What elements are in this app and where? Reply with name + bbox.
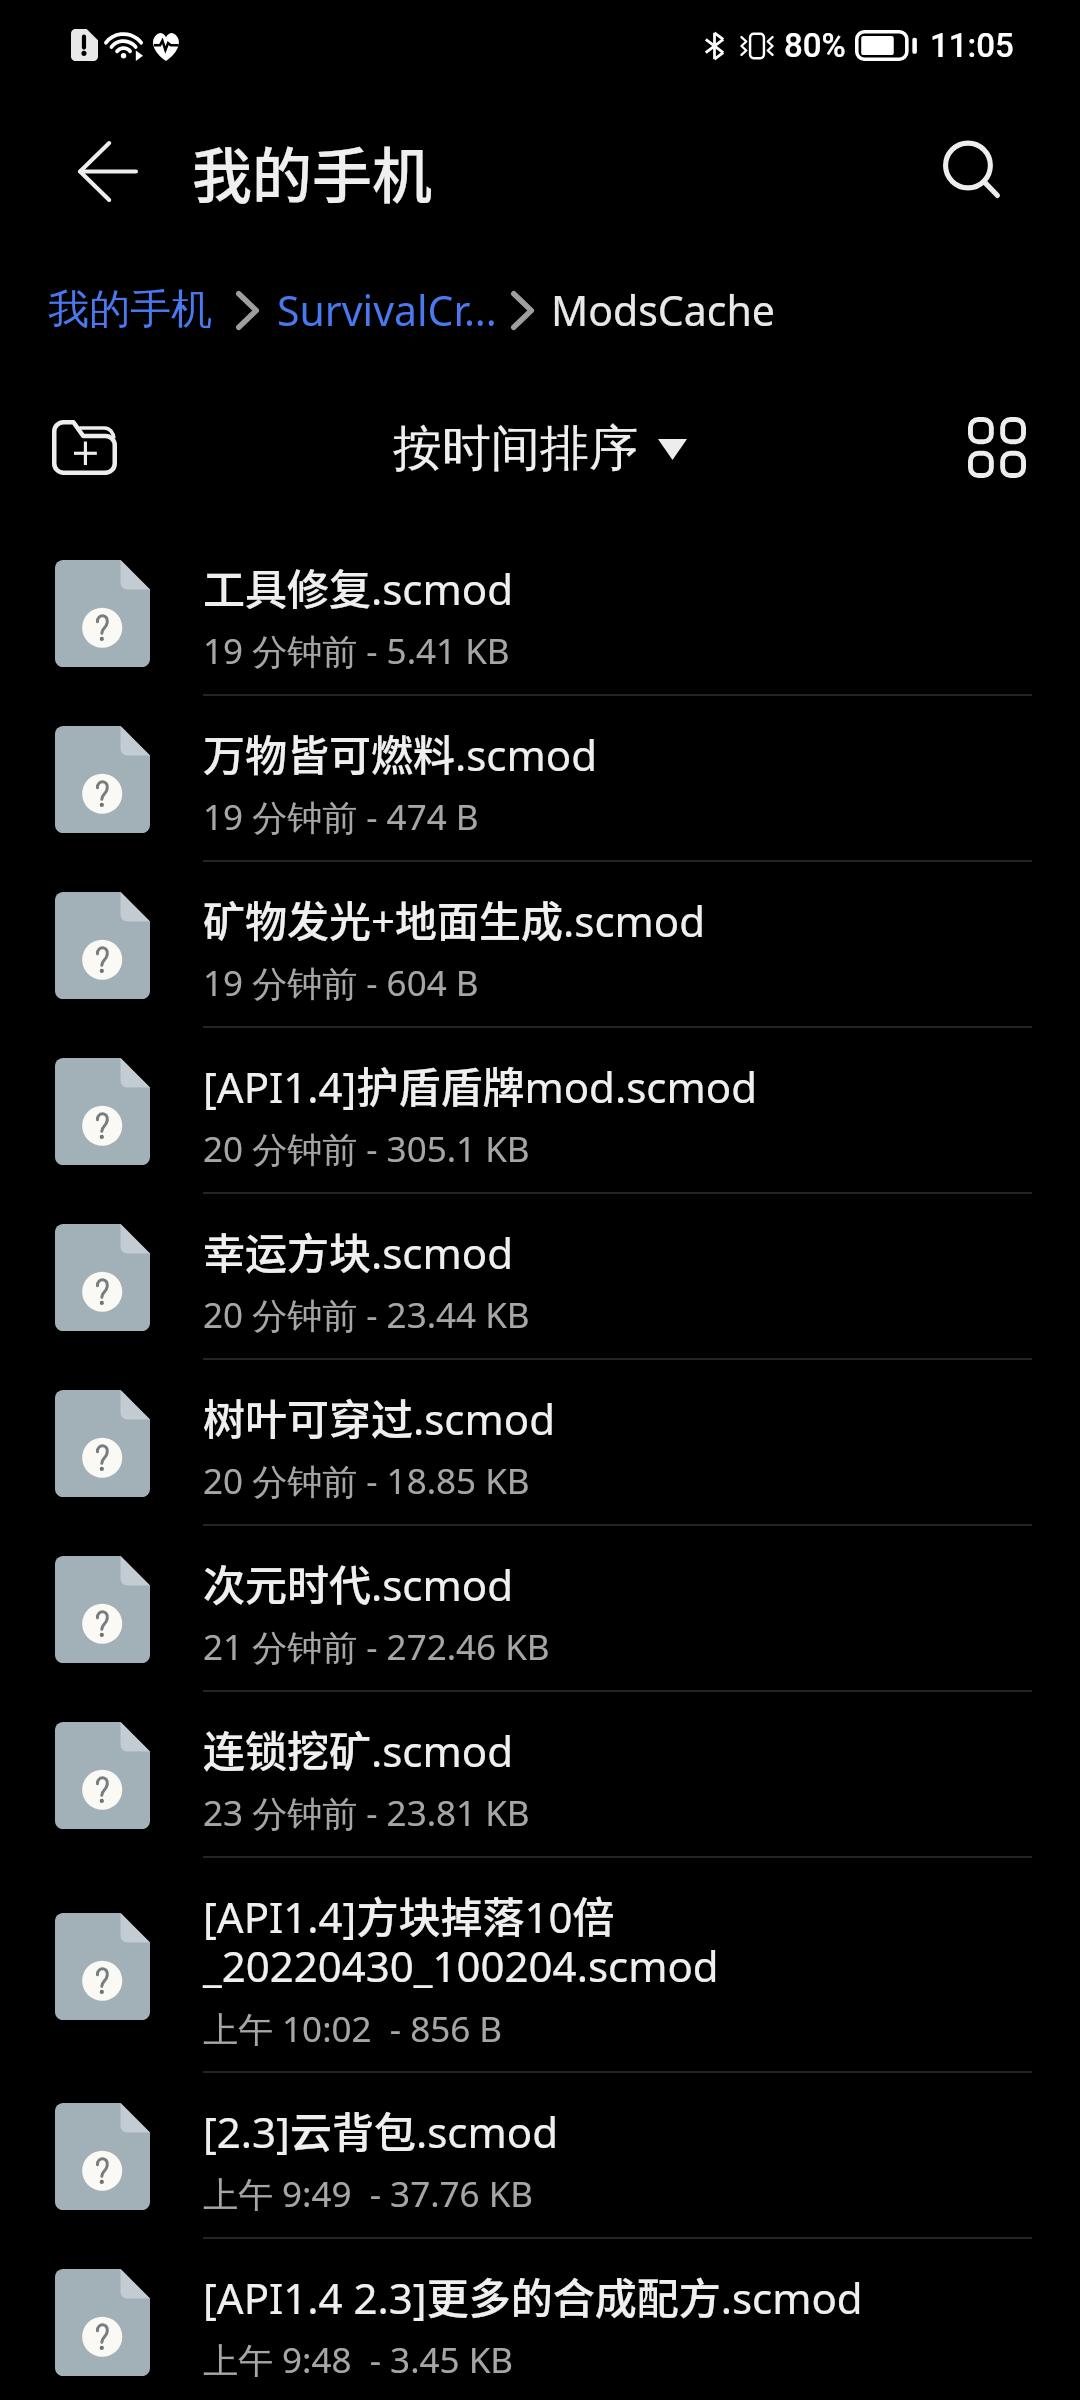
staticText: [2.3]云背包.scmod (203, 2099, 558, 2160)
staticText: 我的手机 (192, 128, 432, 215)
staticText: 次元时代.scmod (203, 1552, 514, 1613)
button[interactable]: New folder (39, 406, 129, 488)
staticText: 11:05 (930, 26, 1014, 65)
staticText: 20 分钟前 - 305.1 KB (203, 1125, 530, 1173)
staticText: 万物皆可燃料.scmod (203, 722, 598, 783)
staticText: 19 分钟前 - 474 B (203, 793, 479, 841)
button[interactable]: 幸运方块.scmod (0, 1194, 1080, 1360)
button[interactable]: [API1.4]护盾盾牌mod.scmod (0, 1028, 1080, 1194)
staticText: 工具修复.scmod (203, 556, 514, 617)
staticText: 20 分钟前 - 18.85 KB (203, 1457, 530, 1505)
button[interactable]: [API1.4 2.3]更多的合成配方.scmod (0, 2239, 1080, 2400)
staticText: 80% (784, 26, 846, 65)
button[interactable]: Back (63, 126, 153, 216)
button[interactable]: 工具修复.scmod (0, 530, 1080, 696)
staticText: 按时间排序 (393, 418, 638, 480)
button[interactable]: 矿物发光+地面生成.scmod (0, 862, 1080, 1028)
staticText: ModsCache (551, 282, 775, 338)
staticText: 矿物发光+地面生成.scmod (203, 888, 706, 949)
button[interactable]: 我的手机 (48, 284, 212, 336)
staticText: 上午 9:48 - 3.45 KB (203, 2336, 514, 2384)
staticText: [API1.4]方块掉落10倍_20220430_100204.scmod (203, 1884, 1032, 1995)
staticText: [API1.4]护盾盾牌mod.scmod (203, 1054, 757, 1115)
staticText: 上午 10:02 - 856 B (203, 2005, 503, 2053)
staticText: 上午 9:49 - 37.76 KB (203, 2170, 534, 2218)
staticText: 树叶可穿过.scmod (203, 1386, 556, 1447)
staticText: 19 分钟前 - 604 B (203, 959, 479, 1007)
button[interactable]: 万物皆可燃料.scmod (0, 696, 1080, 862)
button[interactable]: 按时间排序 (385, 412, 695, 486)
staticText: [API1.4 2.3]更多的合成配方.scmod (203, 2265, 863, 2326)
staticText: 21 分钟前 - 272.46 KB (203, 1623, 550, 1671)
button[interactable]: 次元时代.scmod (0, 1526, 1080, 1692)
staticText: 连锁挖矿.scmod (203, 1718, 514, 1779)
button[interactable]: [2.3]云背包.scmod (0, 2073, 1080, 2239)
staticText: 20 分钟前 - 23.44 KB (203, 1291, 530, 1339)
staticText: 23 分钟前 - 23.81 KB (203, 1789, 530, 1837)
button[interactable]: 连锁挖矿.scmod (0, 1692, 1080, 1858)
button[interactable]: 树叶可穿过.scmod (0, 1360, 1080, 1526)
button[interactable]: [API1.4]方块掉落10倍_20220430_100204.scmod (0, 1858, 1080, 2073)
staticText: 幸运方块.scmod (203, 1220, 514, 1281)
button[interactable]: Search (926, 124, 1016, 214)
button[interactable]: SurvivalCr... (277, 282, 497, 338)
button[interactable]: Grid view (952, 402, 1042, 492)
staticText: 19 分钟前 - 5.41 KB (203, 627, 510, 675)
